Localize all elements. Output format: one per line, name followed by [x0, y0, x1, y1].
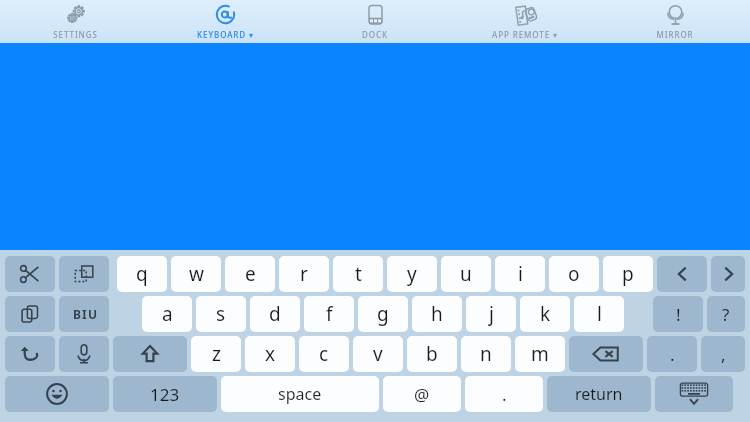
- staticText: h: [431, 301, 443, 327]
- button[interactable]: Copy: [59, 256, 109, 292]
- staticText: v: [373, 341, 383, 367]
- button[interactable]: Cut: [5, 256, 55, 292]
- staticText: l: [597, 301, 602, 327]
- button[interactable]: a: [142, 296, 192, 332]
- staticText: r: [300, 261, 308, 287]
- button[interactable]: p: [603, 256, 653, 292]
- staticText: o: [568, 261, 580, 287]
- button[interactable]: KEYBOARD: [150, 0, 300, 43]
- button[interactable]: u: [441, 256, 491, 292]
- button[interactable]: x: [245, 336, 295, 372]
- button[interactable]: MIRROR: [600, 0, 750, 43]
- button[interactable]: ?: [707, 296, 745, 332]
- button[interactable]: Dictate: [59, 336, 109, 372]
- staticText: x: [265, 341, 276, 367]
- button[interactable]: v: [353, 336, 403, 372]
- button[interactable]: y: [387, 256, 437, 292]
- button[interactable]: h: [412, 296, 462, 332]
- staticText: ,: [721, 343, 726, 366]
- button[interactable]: s: [196, 296, 246, 332]
- staticText: return: [575, 383, 623, 405]
- staticText: a: [162, 301, 173, 327]
- staticText: SETTINGS: [53, 29, 98, 40]
- button[interactable]: APP REMOTE: [450, 0, 600, 43]
- staticText: w: [189, 261, 204, 287]
- button[interactable]: !: [653, 296, 703, 332]
- button[interactable]: o: [549, 256, 599, 292]
- staticText: g: [377, 301, 389, 327]
- staticText: .: [670, 343, 675, 366]
- button[interactable]: g: [358, 296, 408, 332]
- staticText: y: [407, 261, 417, 287]
- button[interactable]: @: [383, 376, 461, 412]
- staticText: u: [460, 261, 472, 287]
- button[interactable]: w: [171, 256, 221, 292]
- button[interactable]: Hide keyboard: [655, 376, 733, 412]
- staticText: 123: [150, 383, 180, 406]
- staticText: .: [502, 383, 507, 406]
- staticText: p: [622, 261, 634, 287]
- button[interactable]: Previous: [657, 256, 707, 292]
- staticText: n: [480, 341, 492, 367]
- staticText: j: [489, 301, 494, 327]
- button[interactable]: Shift: [113, 336, 187, 372]
- button[interactable]: j: [466, 296, 516, 332]
- staticText: d: [269, 301, 281, 327]
- staticText: DOCK: [362, 29, 388, 40]
- button[interactable]: Next: [711, 256, 745, 292]
- button[interactable]: Emoji: [5, 376, 109, 412]
- button[interactable]: b: [407, 336, 457, 372]
- other: MIRROR: [663, 3, 688, 28]
- button[interactable]: t: [333, 256, 383, 292]
- staticText: q: [136, 261, 148, 287]
- staticText: b: [426, 341, 438, 367]
- staticText: i: [518, 261, 523, 287]
- button[interactable]: k: [520, 296, 570, 332]
- staticText: MIRROR: [656, 29, 694, 40]
- other: SETTINGS: [63, 3, 88, 28]
- button[interactable]: i: [495, 256, 545, 292]
- staticText: @: [414, 383, 430, 406]
- staticText: !: [676, 303, 681, 326]
- button[interactable]: e: [225, 256, 275, 292]
- other: DOCK: [363, 3, 388, 28]
- button[interactable]: c: [299, 336, 349, 372]
- other: KEYBOARD: [213, 3, 238, 28]
- staticText: e: [245, 261, 256, 287]
- button[interactable]: SETTINGS: [0, 0, 150, 43]
- staticText: c: [319, 341, 329, 367]
- button[interactable]: .: [647, 336, 697, 372]
- button[interactable]: d: [250, 296, 300, 332]
- staticText: t: [355, 261, 362, 287]
- staticText: z: [212, 341, 221, 367]
- other: APP REMOTE: [513, 3, 538, 28]
- staticText: B I U: [73, 306, 96, 322]
- staticText: space: [278, 383, 322, 405]
- staticText: m: [531, 341, 549, 367]
- button[interactable]: Backspace: [569, 336, 643, 372]
- button[interactable]: Bold italic underline: [59, 296, 109, 332]
- staticText: s: [216, 301, 226, 327]
- button[interactable]: 123: [113, 376, 217, 412]
- staticText: KEYBOARD ▾: [197, 29, 254, 40]
- button[interactable]: l: [574, 296, 624, 332]
- button[interactable]: Paste: [5, 296, 55, 332]
- button[interactable]: .: [465, 376, 543, 412]
- button[interactable]: f: [304, 296, 354, 332]
- button[interactable]: m: [515, 336, 565, 372]
- staticText: k: [540, 301, 551, 327]
- staticText: f: [326, 301, 333, 327]
- button[interactable]: n: [461, 336, 511, 372]
- button[interactable]: DOCK: [300, 0, 450, 43]
- button[interactable]: q: [117, 256, 167, 292]
- button[interactable]: return: [547, 376, 651, 412]
- button[interactable]: space: [221, 376, 379, 412]
- staticText: ?: [722, 303, 730, 326]
- button[interactable]: z: [191, 336, 241, 372]
- button[interactable]: r: [279, 256, 329, 292]
- button[interactable]: Undo: [5, 336, 55, 372]
- button[interactable]: ,: [701, 336, 745, 372]
- staticText: APP REMOTE ▾: [492, 29, 558, 40]
